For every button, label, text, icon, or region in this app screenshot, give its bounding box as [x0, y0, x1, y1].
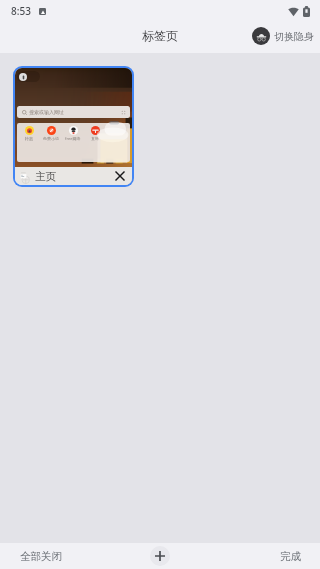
- staticText: 搜索或输入网址: [29, 109, 64, 115]
- button[interactable]: 搜索或输入网址: [15, 68, 132, 185]
- button[interactable]: New tab: [150, 546, 170, 566]
- staticText: 免费小说: [43, 136, 59, 141]
- staticText: 完成: [280, 550, 301, 563]
- staticText: 特惠: [25, 136, 33, 141]
- staticText: 直播: [91, 136, 99, 141]
- staticText: 全部关闭: [20, 550, 62, 563]
- staticText: free网络: [65, 136, 81, 141]
- button[interactable]: 完成: [170, 543, 320, 569]
- staticText: 切换隐身: [274, 30, 314, 43]
- staticText: 主页: [35, 170, 56, 183]
- button[interactable]: Close tab: [113, 169, 127, 183]
- button[interactable]: 切换隐身: [250, 25, 316, 47]
- staticText: 标签页: [142, 28, 178, 43]
- button[interactable]: 全部关闭: [0, 543, 150, 569]
- staticText: 8:53: [11, 4, 31, 18]
